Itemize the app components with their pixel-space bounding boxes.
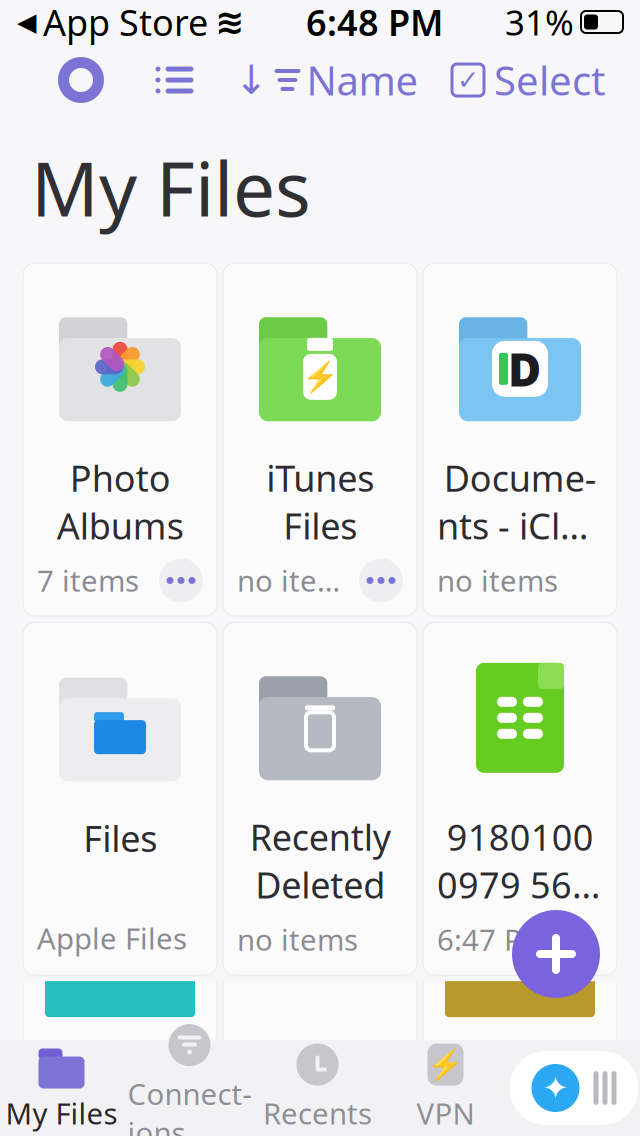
button[interactable]: Recently Deleted: [223, 622, 417, 975]
staticText: Select: [494, 53, 605, 106]
button[interactable]: 91801000979 5690: [423, 622, 617, 975]
staticText: ✓: [457, 65, 479, 95]
button[interactable]: View options: [146, 52, 202, 108]
staticText: Recents: [263, 1093, 372, 1132]
staticText: Apple Files: [37, 919, 187, 958]
staticText: Files: [83, 814, 157, 862]
staticText: ⚡: [301, 360, 338, 394]
staticText: 31%: [505, 0, 574, 45]
staticText: Name: [306, 53, 418, 106]
staticText: 91801000979 5690: [437, 813, 603, 908]
staticText: no items: [237, 920, 358, 959]
button[interactable]: D: [423, 263, 617, 616]
staticText: 6:47 PM: [437, 920, 549, 959]
staticText: no items: [437, 561, 558, 600]
staticText: ↓: [234, 57, 268, 103]
staticText: Recently Deleted: [249, 813, 390, 908]
button[interactable]: ⚡: [223, 263, 417, 616]
staticText: ◀: [17, 8, 36, 36]
button[interactable]: ✓: [452, 52, 605, 108]
staticText: Documents - iCloud: [437, 454, 603, 549]
staticText: My Files: [31, 138, 311, 237]
staticText: no items: [237, 561, 351, 600]
button[interactable]: Add: [512, 910, 600, 998]
staticText: D: [508, 339, 541, 399]
staticText: 7 items: [37, 561, 139, 600]
staticText: VPN: [416, 1093, 474, 1132]
staticText: 6:48 PM: [306, 0, 443, 46]
staticText: Connections: [127, 1074, 251, 1136]
button[interactable]: Photo Albums: [23, 263, 217, 616]
button[interactable]: ⚡: [381, 1042, 509, 1134]
button[interactable]: Settings: [49, 50, 113, 110]
button[interactable]: ↓: [234, 52, 418, 108]
staticText: My Files: [5, 1093, 117, 1132]
staticText: ≋: [215, 2, 244, 42]
button[interactable]: Browser: [509, 1051, 638, 1125]
button[interactable]: Connections: [125, 1042, 253, 1134]
button[interactable]: My Files: [0, 1042, 125, 1134]
staticText: ✦: [542, 1070, 569, 1106]
button[interactable]: Files: [23, 622, 217, 975]
staticText: ⚡: [427, 1048, 464, 1081]
staticText: Photo Albums: [56, 454, 183, 549]
button[interactable]: Recents: [253, 1042, 381, 1134]
staticText: App Store: [43, 0, 208, 46]
staticText: iTunes Files: [266, 454, 374, 549]
